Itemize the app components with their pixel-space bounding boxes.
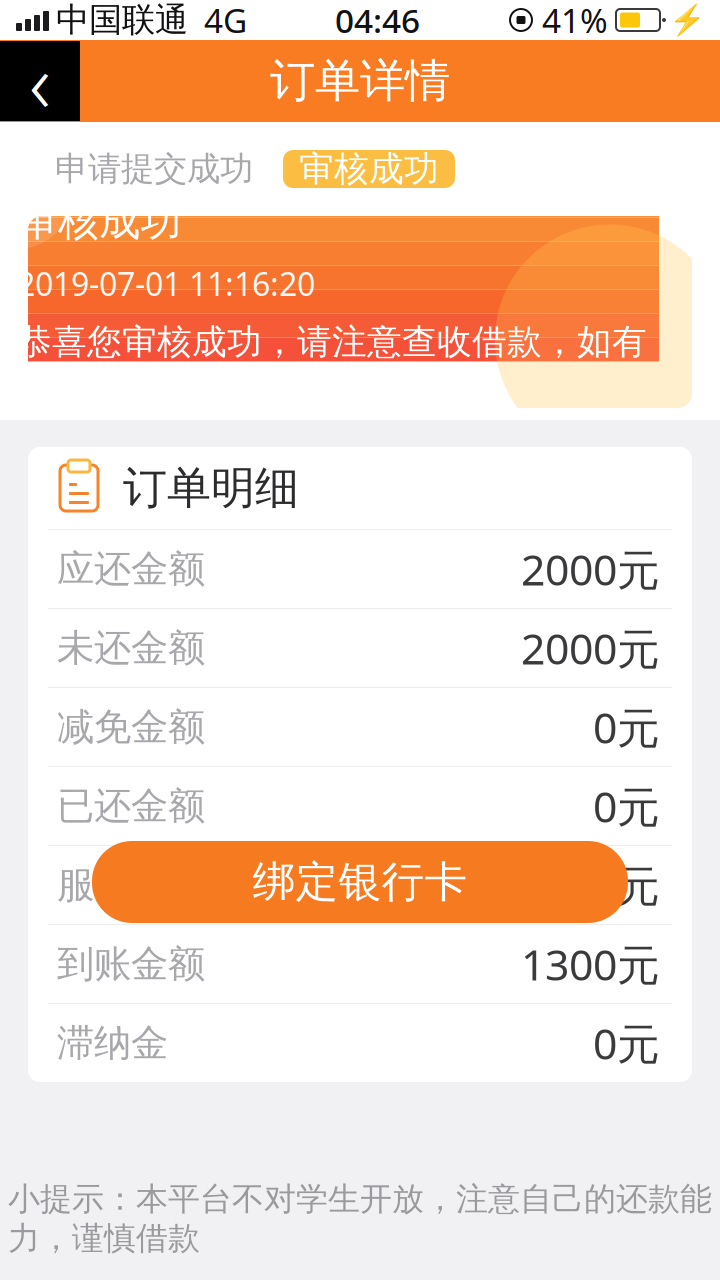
staticText: 0元 <box>593 699 660 755</box>
staticText: 小提示：本平台不对学生开放，注意自己的还款能力，谨慎借款 <box>8 1179 712 1258</box>
staticText: 2019-07-01 11:16:20 <box>17 262 315 305</box>
staticText: ⚡ <box>669 3 706 37</box>
staticText: 绑定银行卡 <box>252 856 467 908</box>
staticText: 订单详情 <box>270 53 450 109</box>
staticText: 到账金额 <box>57 941 205 987</box>
button[interactable]: 返回 <box>0 41 80 121</box>
staticText: 2000元 <box>521 541 660 597</box>
staticText: 已还金额 <box>57 783 205 829</box>
staticText: 4G <box>204 0 247 42</box>
staticText: 申请提交成功 <box>55 148 253 189</box>
staticText: 系客服 <box>17 412 122 454</box>
button[interactable]: 审核成功 <box>283 150 455 188</box>
staticText: 0元 <box>593 1015 660 1071</box>
staticText: 中国联通 <box>56 0 188 40</box>
staticText: 审核成功 <box>17 195 181 246</box>
staticText: 04:46 <box>335 0 420 42</box>
staticText: 减免金额 <box>57 704 205 750</box>
staticText: ‹ <box>29 26 51 136</box>
staticText: 2000元 <box>521 620 660 676</box>
staticText: 订单明细 <box>123 461 299 515</box>
staticText: 滞纳金 <box>57 1020 168 1066</box>
staticText: 1300元 <box>521 936 660 992</box>
staticText: 41% <box>542 0 608 42</box>
button[interactable]: 绑定银行卡 <box>92 841 628 923</box>
staticText: 服务费 <box>57 862 168 908</box>
staticText: 恭喜您审核成功，请注意查收借款，如有问题，请联 <box>17 321 647 406</box>
staticText: 审核成功 <box>299 148 439 190</box>
button[interactable]: 申请提交成功 <box>45 143 263 194</box>
staticText: 0元 <box>593 778 660 834</box>
staticText: 700元 <box>545 857 660 913</box>
staticText: 未还金额 <box>57 625 205 671</box>
staticText: 应还金额 <box>57 546 205 592</box>
